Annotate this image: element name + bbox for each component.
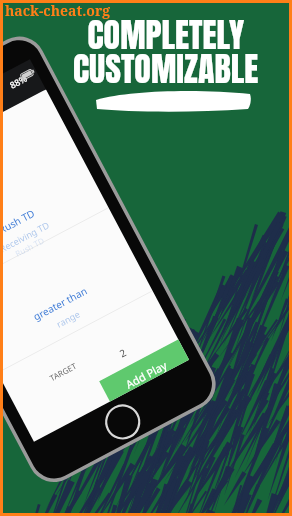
button[interactable] [0, 0, 292, 516]
